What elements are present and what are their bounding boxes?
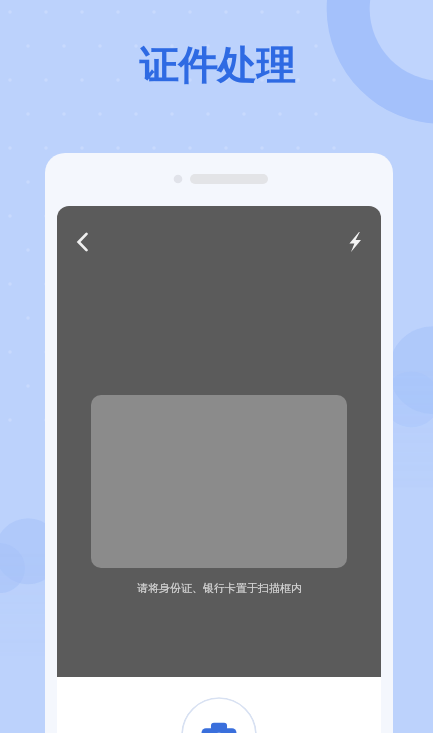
button[interactable]: Capture photo — [181, 697, 257, 733]
staticText: 证件处理 — [139, 41, 295, 90]
button[interactable]: Back — [62, 221, 104, 263]
button[interactable]: Toggle flash — [334, 221, 376, 263]
staticText: 请将身份证、银行卡置于扫描框内 — [137, 581, 302, 595]
